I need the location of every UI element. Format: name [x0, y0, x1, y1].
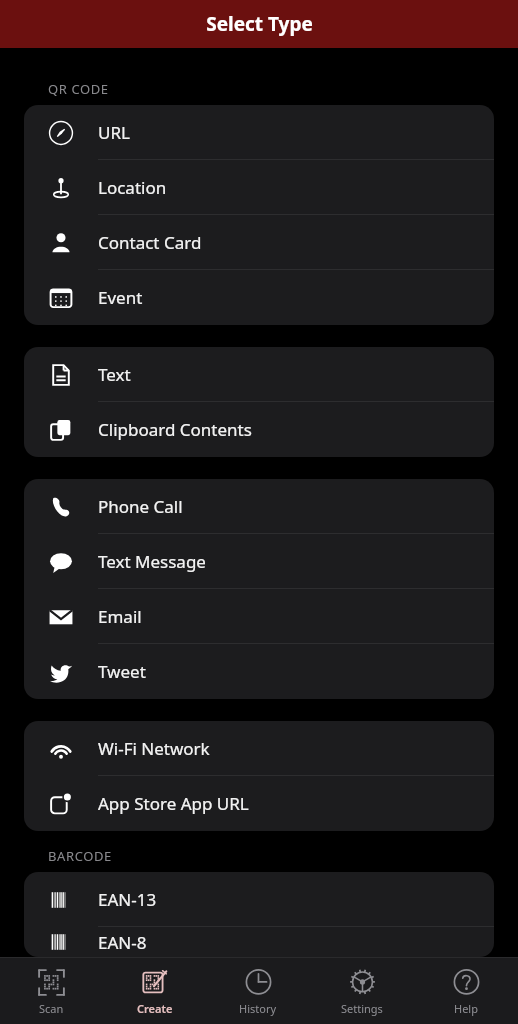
- staticText: BARCODE: [48, 847, 112, 865]
- button[interactable]: Text Message: [24, 534, 494, 589]
- button[interactable]: Contact Card: [24, 215, 494, 270]
- button[interactable]: Settings: [310, 958, 414, 1024]
- staticText: Phone Call: [98, 495, 183, 518]
- button[interactable]: Location: [24, 160, 494, 215]
- staticText: Select Type: [206, 11, 313, 37]
- staticText: Wi-Fi Network: [98, 737, 210, 760]
- button[interactable]: App Store App URL: [24, 776, 494, 831]
- button[interactable]: Event: [24, 270, 494, 325]
- staticText: EAN-8: [98, 931, 147, 954]
- staticText: Text Message: [98, 550, 206, 573]
- button[interactable]: Help: [414, 958, 518, 1024]
- staticText: Contact Card: [98, 231, 202, 254]
- button[interactable]: Phone Call: [24, 479, 494, 534]
- staticText: Create: [137, 1001, 173, 1016]
- button[interactable]: URL: [24, 105, 494, 160]
- staticText: Email: [98, 605, 142, 628]
- button[interactable]: EAN-13: [24, 872, 494, 927]
- staticText: Tweet: [98, 660, 146, 683]
- staticText: Event: [98, 286, 143, 309]
- button[interactable]: Scan: [0, 958, 103, 1024]
- button[interactable]: EAN-8: [24, 927, 494, 957]
- staticText: Clipboard Contents: [98, 418, 252, 441]
- staticText: Settings: [341, 1001, 383, 1016]
- button[interactable]: History: [206, 958, 310, 1024]
- staticText: URL: [98, 121, 130, 144]
- button[interactable]: Tweet: [24, 644, 494, 699]
- staticText: App Store App URL: [98, 792, 249, 815]
- staticText: Help: [454, 1001, 478, 1016]
- button[interactable]: Clipboard Contents: [24, 402, 494, 457]
- button[interactable]: Create: [103, 958, 206, 1024]
- button[interactable]: Text: [24, 347, 494, 402]
- staticText: Location: [98, 176, 167, 199]
- button[interactable]: Email: [24, 589, 494, 644]
- staticText: QR CODE: [48, 80, 109, 98]
- staticText: EAN-13: [98, 888, 157, 911]
- staticText: History: [239, 1001, 277, 1016]
- button[interactable]: Wi-Fi Network: [24, 721, 494, 776]
- staticText: Scan: [39, 1001, 64, 1016]
- staticText: Text: [98, 363, 131, 386]
